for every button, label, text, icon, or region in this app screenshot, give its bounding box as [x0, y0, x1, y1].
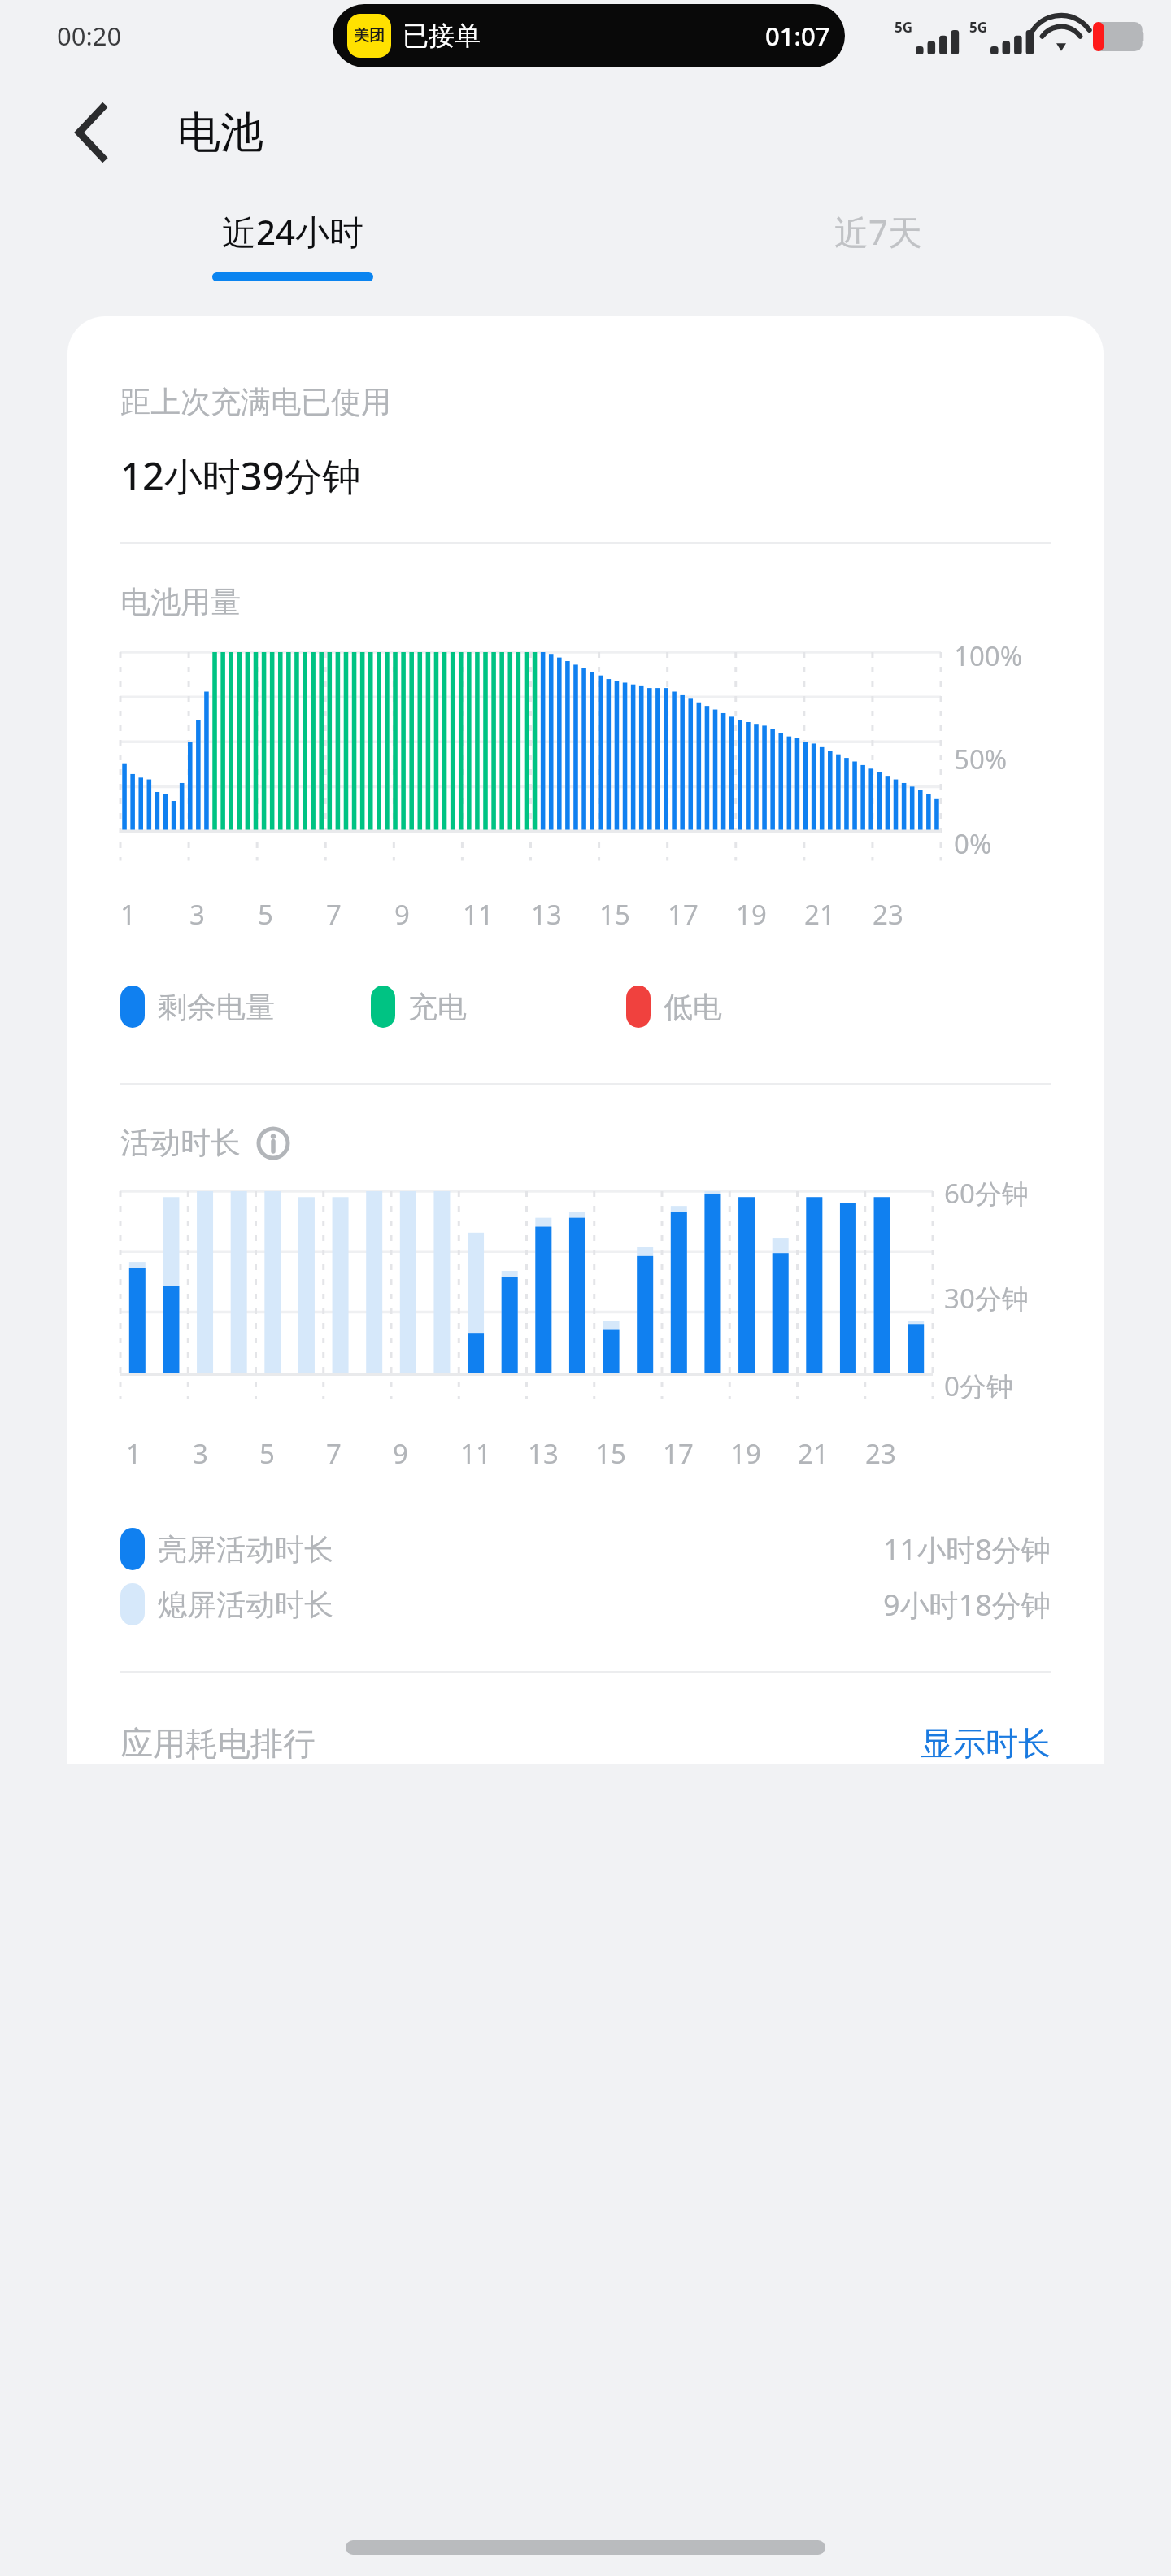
staticText: 15 — [599, 896, 630, 933]
button[interactable]: 说明 — [255, 1125, 291, 1161]
staticText: 5G — [969, 18, 988, 37]
staticText: 电池用量 — [120, 583, 241, 621]
staticText: 电池 — [177, 106, 263, 160]
staticText: 近7天 — [834, 208, 923, 255]
button[interactable]: 应用耗电排行 — [120, 1723, 1051, 1764]
staticText: 剩余电量 — [158, 989, 275, 1025]
staticText: 熄屏活动时长 — [158, 1586, 333, 1623]
staticText: 19 — [730, 1435, 761, 1472]
staticText: 11小时8分钟 — [883, 1529, 1051, 1569]
button[interactable]: 近7天 — [585, 194, 1171, 299]
staticText: 5 — [259, 1435, 275, 1472]
staticText: 近24小时 — [222, 208, 364, 255]
staticText: 23 — [865, 1435, 896, 1472]
staticText: 23 — [873, 896, 903, 933]
staticText: 50% — [954, 741, 1008, 777]
staticText: 00:20 — [57, 19, 122, 53]
staticText: 15 — [595, 1435, 626, 1472]
staticText: 11 — [463, 896, 494, 933]
staticText: 30分钟 — [944, 1280, 1029, 1316]
staticText: 1 — [126, 1435, 141, 1472]
staticText: 17 — [668, 896, 699, 933]
staticText: 5 — [258, 896, 273, 933]
staticText: 活动时长 — [120, 1124, 241, 1162]
staticText: 100% — [954, 637, 1023, 674]
staticText: 01:07 — [765, 19, 830, 53]
staticText: 9 — [394, 896, 410, 933]
staticText: 13 — [531, 896, 562, 933]
staticText: 3 — [193, 1435, 208, 1472]
staticText: 0分钟 — [944, 1368, 1013, 1404]
staticText: 11 — [460, 1435, 491, 1472]
staticText: 0% — [954, 825, 992, 862]
staticText: 60分钟 — [944, 1175, 1029, 1212]
staticText: 已接单 — [403, 20, 481, 52]
button[interactable]: 近24小时 — [0, 194, 585, 299]
staticText: 美团 — [354, 26, 385, 46]
staticText: 7 — [326, 1435, 342, 1472]
staticText: 应用耗电排行 — [120, 1723, 316, 1764]
staticText: 9 — [393, 1435, 408, 1472]
staticText: 1 — [120, 896, 136, 933]
button[interactable]: 返回 — [54, 94, 132, 172]
staticText: 21 — [804, 896, 835, 933]
staticText: 13 — [528, 1435, 559, 1472]
staticText: 充电 — [408, 989, 467, 1025]
staticText: 12小时39分钟 — [120, 450, 361, 502]
staticText: 3 — [189, 896, 205, 933]
staticText: 9小时18分钟 — [883, 1585, 1051, 1625]
staticText: 21 — [798, 1435, 829, 1472]
staticText: 低电 — [664, 989, 722, 1025]
staticText: 19 — [736, 896, 767, 933]
staticText: 显示时长 — [921, 1723, 1051, 1764]
staticText: 距上次充满电已使用 — [120, 383, 391, 421]
staticText: 7 — [326, 896, 342, 933]
staticText: 5G — [895, 18, 913, 37]
staticText: 17 — [663, 1435, 694, 1472]
staticText: 亮屏活动时长 — [158, 1531, 333, 1568]
